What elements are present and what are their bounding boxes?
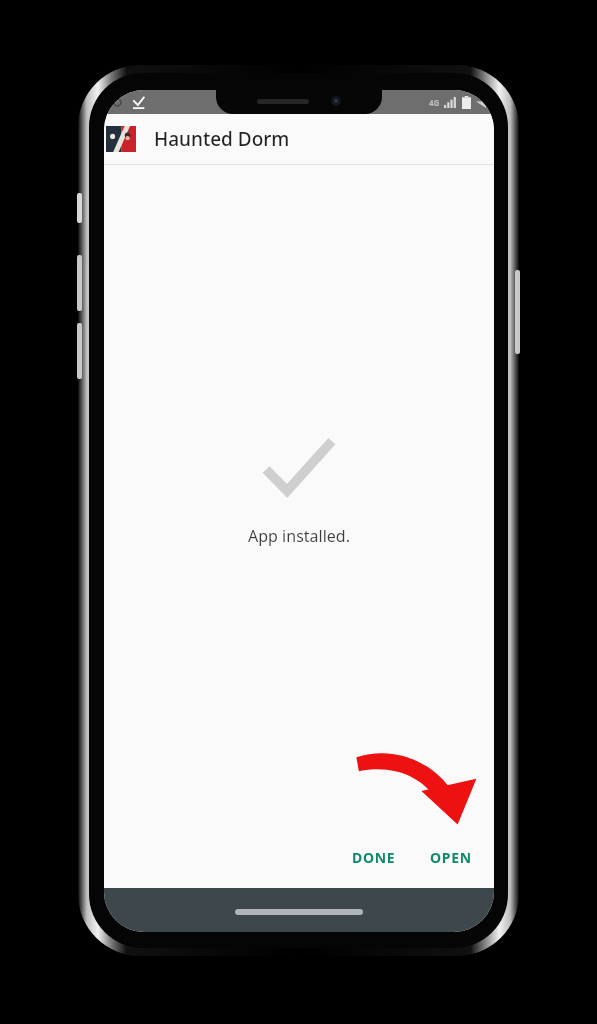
staticText: Haunted Dorm xyxy=(154,126,290,152)
staticText: OPEN xyxy=(430,848,472,867)
button[interactable]: DONE xyxy=(338,839,410,876)
staticText: DONE xyxy=(352,848,396,867)
button[interactable]: OPEN xyxy=(416,839,486,876)
staticText: App installed. xyxy=(248,525,350,547)
staticText: 4G xyxy=(429,97,440,108)
